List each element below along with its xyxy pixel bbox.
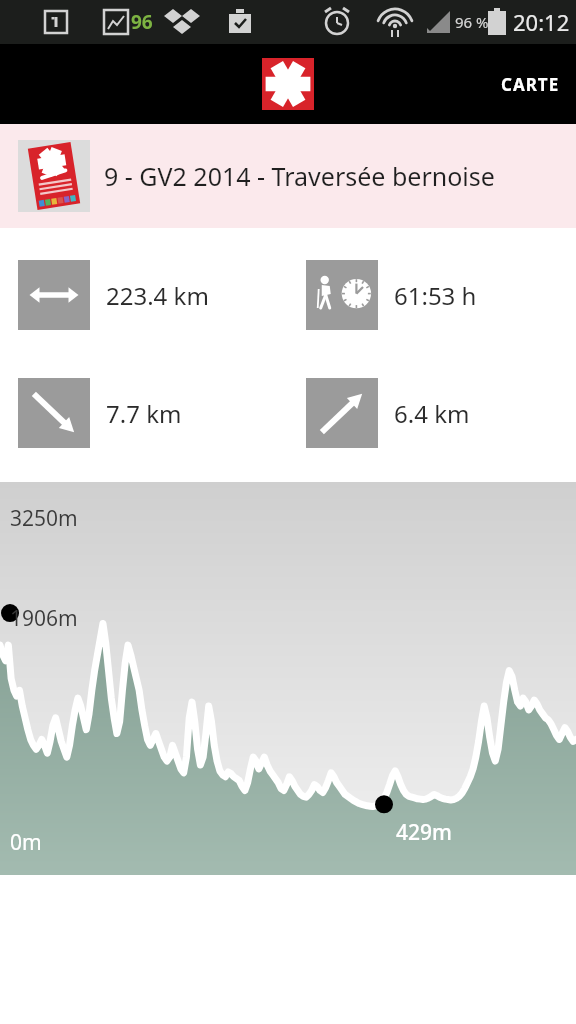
staticText: 9 - GV2 2014 - Traversée bernoise xyxy=(104,159,495,193)
staticText: 20:12 xyxy=(513,7,570,37)
staticText: 6.4 km xyxy=(394,397,470,430)
staticText: 1906m xyxy=(10,604,78,633)
button[interactable]: 223.4 km xyxy=(18,260,288,330)
staticText: CARTE xyxy=(501,73,560,96)
button[interactable]: App logo xyxy=(260,56,316,112)
staticText: 429m xyxy=(396,818,452,847)
button[interactable]: 7.7 km xyxy=(18,378,288,448)
staticText: 96 xyxy=(131,9,153,35)
staticText: 61:53 h xyxy=(394,279,477,312)
staticText: 223.4 km xyxy=(106,279,209,312)
button[interactable]: 61:53 h xyxy=(306,260,576,330)
button[interactable]: CARTE xyxy=(485,63,576,106)
button[interactable]: 6.4 km xyxy=(306,378,576,448)
staticText: 3250m xyxy=(10,504,78,533)
staticText: 7.7 km xyxy=(106,397,182,430)
staticText: 96 % xyxy=(455,12,489,32)
button[interactable]: 9 - GV2 2014 - Traversée bernoise xyxy=(0,124,576,228)
staticText: 0m xyxy=(10,828,42,857)
